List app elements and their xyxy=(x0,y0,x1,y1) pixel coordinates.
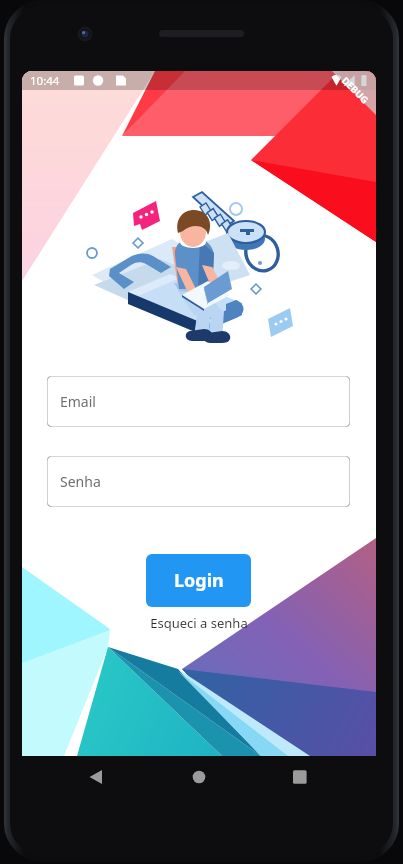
staticText: Email xyxy=(60,392,96,411)
button[interactable]: Login xyxy=(146,554,251,607)
staticText: Esqueci a senha xyxy=(150,614,248,632)
button[interactable]: Esqueci a senha xyxy=(22,612,376,634)
button[interactable]: Email xyxy=(47,376,350,427)
staticText: DEBUG xyxy=(339,74,371,107)
button[interactable]: Senha xyxy=(47,456,350,507)
staticText: 10:44 xyxy=(30,73,60,89)
staticText: Login xyxy=(174,568,224,593)
staticText: Senha xyxy=(60,472,101,491)
